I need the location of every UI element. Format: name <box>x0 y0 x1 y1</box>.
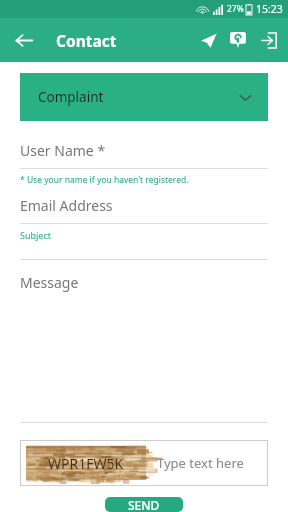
staticText: 27% <box>227 3 244 15</box>
staticText: Type text here <box>157 454 244 472</box>
button[interactable]: WPR1FW5K <box>20 440 268 486</box>
button[interactable]: Complaint <box>20 73 268 121</box>
staticText: * Use your name if you haven't registere… <box>20 174 189 186</box>
button[interactable]: Logout <box>254 26 282 54</box>
staticText: Email Address <box>20 196 113 215</box>
button[interactable]: Back <box>8 24 40 56</box>
staticText: SEND <box>128 497 160 512</box>
staticText: 15:23 <box>256 2 283 16</box>
staticText: Subject <box>20 229 52 241</box>
button[interactable]: SEND <box>105 497 183 512</box>
staticText: WPR1FW5K <box>48 454 124 473</box>
staticText: Complaint <box>38 88 104 106</box>
staticText: Contact <box>56 30 117 51</box>
staticText: User Name * <box>20 141 106 160</box>
button[interactable]: Help <box>224 26 252 54</box>
button[interactable]: Send <box>194 26 222 54</box>
staticText: Message <box>20 273 79 292</box>
